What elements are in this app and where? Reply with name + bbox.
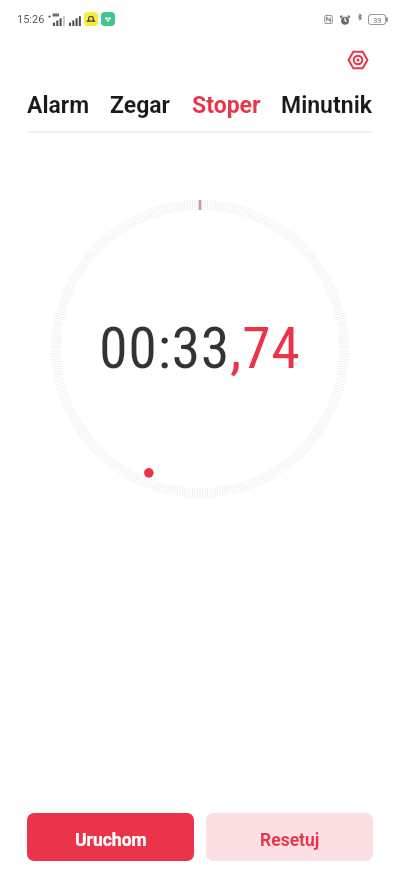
staticText: 39 — [373, 15, 382, 24]
button[interactable]: Resetuj — [206, 813, 373, 861]
staticText: 00:33,74 — [99, 314, 301, 382]
staticText: Resetuj — [260, 830, 320, 851]
button[interactable]: Uruchom — [27, 813, 194, 861]
staticText: Alarm — [27, 92, 90, 119]
button[interactable]: Settings — [344, 46, 372, 74]
staticText: 15:26 — [17, 13, 45, 26]
button[interactable]: Minutnik — [281, 84, 373, 127]
button[interactable]: Zegar — [110, 84, 171, 127]
button[interactable]: Stoper — [192, 84, 261, 127]
staticText: Zegar — [110, 92, 171, 119]
staticText: Uruchom — [75, 830, 147, 851]
button[interactable]: Alarm — [27, 84, 90, 127]
staticText: Stoper — [192, 92, 261, 119]
staticText: Minutnik — [281, 92, 373, 119]
